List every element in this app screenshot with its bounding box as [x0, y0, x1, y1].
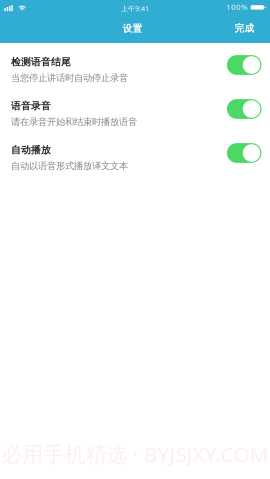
staticText: 上午9:41	[121, 4, 149, 13]
staticText: 100%	[226, 1, 248, 12]
staticText: 当您停止讲话时自动停止录音	[11, 72, 128, 84]
button[interactable]: 自动播放	[227, 143, 261, 163]
button[interactable]: 检测语音结尾	[0, 43, 270, 87]
button[interactable]: 语音录音	[0, 87, 270, 131]
staticText: 必用手机精选 · BYJSJXY.COM	[1, 440, 268, 468]
staticText: 请在录音开始和结束时播放语音	[11, 116, 137, 128]
button[interactable]: 自动播放	[0, 131, 270, 175]
staticText: 检测语音结尾	[11, 56, 71, 68]
staticText: 自动以语音形式播放译文文本	[11, 160, 128, 172]
button[interactable]: 语音录音	[227, 99, 261, 119]
staticText: 完成	[234, 22, 254, 34]
staticText: 自动播放	[11, 144, 51, 156]
button[interactable]: 完成	[226, 17, 262, 39]
button[interactable]: 检测语音结尾	[227, 55, 261, 75]
staticText: 语音录音	[11, 100, 51, 112]
staticText: 设置	[122, 22, 142, 35]
